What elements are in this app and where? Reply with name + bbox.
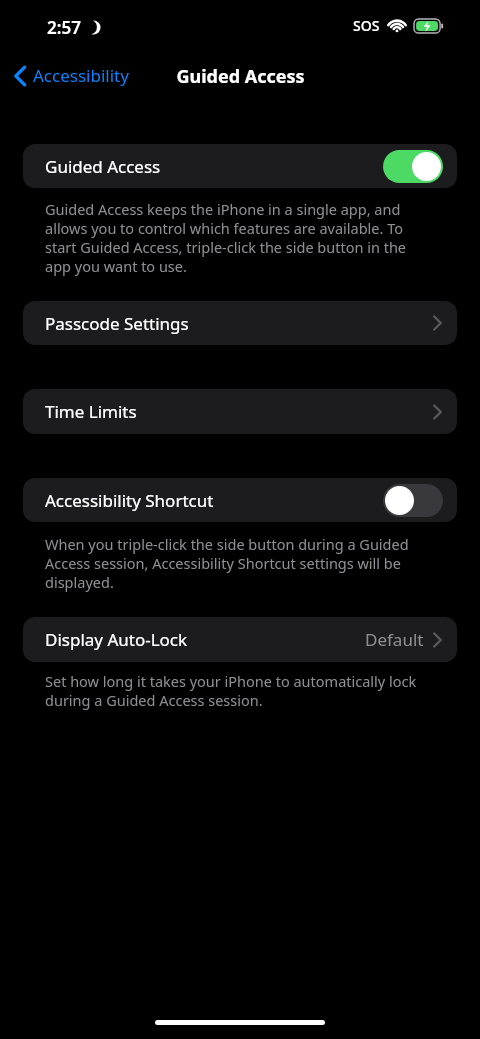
button[interactable]: Guided Access [23, 144, 457, 188]
staticText: Passcode Settings [45, 312, 189, 335]
staticText: 2:57 [47, 16, 81, 39]
staticText: Accessibility Shortcut [45, 489, 214, 512]
button[interactable]: Toggle on [383, 150, 443, 183]
staticText: Time Limits [45, 400, 137, 423]
staticText: Guided Access [176, 64, 305, 89]
button[interactable]: Toggle off [383, 484, 443, 517]
staticText: When you triple-click the side button du… [45, 534, 420, 592]
staticText: Default [365, 628, 424, 651]
button[interactable]: Accessibility Shortcut [23, 478, 457, 522]
other: Open [432, 314, 443, 332]
button[interactable]: Time Limits [23, 389, 457, 434]
other: Open [432, 403, 443, 421]
staticText: Set how long it takes your iPhone to aut… [45, 671, 420, 710]
staticText: Display Auto-Lock [45, 628, 188, 651]
other: Open [432, 631, 443, 649]
button[interactable]: Passcode Settings [23, 301, 457, 345]
staticText: Guided Access [45, 155, 161, 178]
staticText: SOS [353, 16, 380, 35]
staticText: Guided Access keeps the iPhone in a sing… [45, 199, 420, 276]
button[interactable]: Accessibility [10, 60, 133, 91]
button[interactable]: Display Auto-Lock [23, 617, 457, 662]
staticText: Accessibility [33, 64, 129, 87]
